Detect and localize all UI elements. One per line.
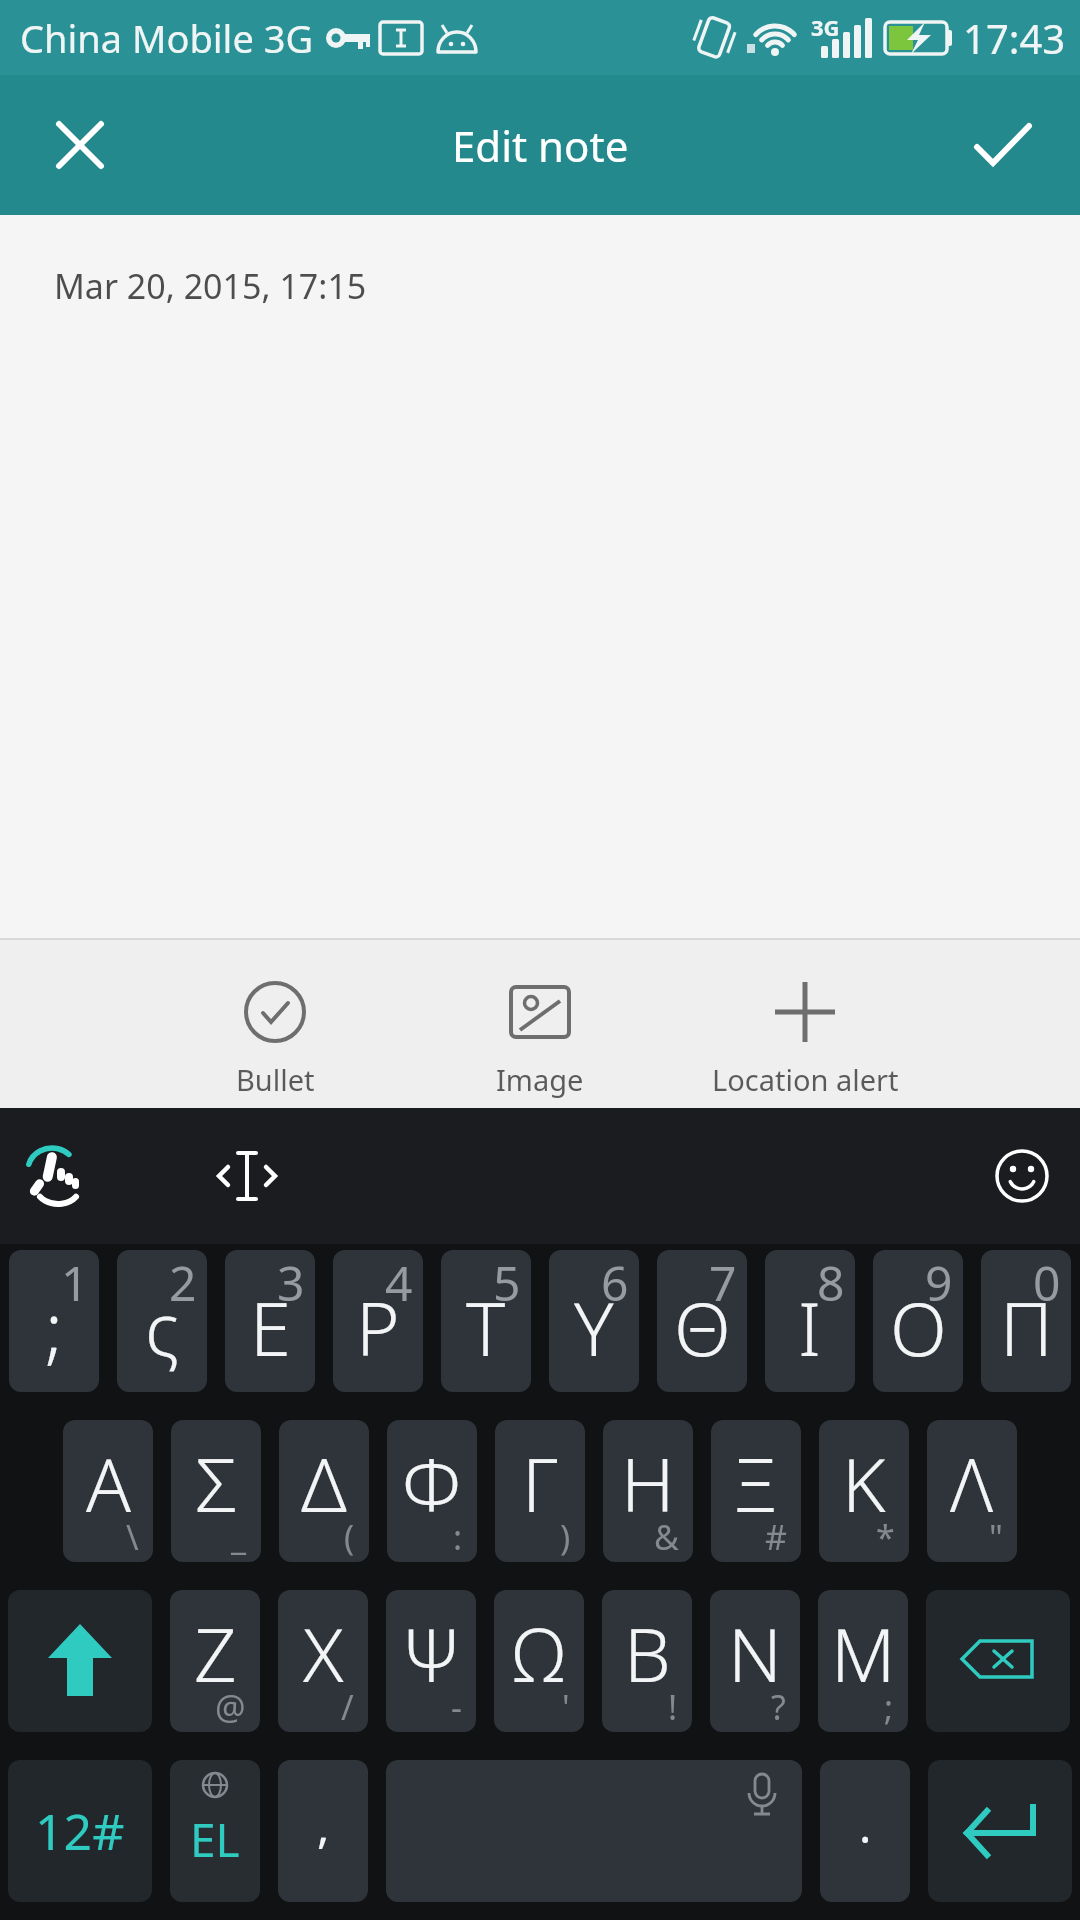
staticText: Γ <box>522 1433 558 1534</box>
button[interactable]: Ζ <box>170 1590 260 1732</box>
button[interactable]: . <box>820 1760 910 1902</box>
button[interactable]: Μ <box>818 1590 908 1732</box>
staticText: Δ <box>301 1433 347 1534</box>
staticText: Π <box>1000 1277 1053 1378</box>
staticText: Ξ <box>733 1433 779 1534</box>
staticText: / <box>341 1684 354 1730</box>
button[interactable]: 5 <box>441 1250 531 1392</box>
staticText: \ <box>126 1514 139 1560</box>
button[interactable]: Β <box>602 1590 692 1732</box>
button[interactable] <box>46 111 114 179</box>
button[interactable]: 3 <box>225 1250 315 1392</box>
button[interactable]: Image <box>390 980 690 1099</box>
button[interactable]: 1 <box>9 1250 99 1392</box>
button[interactable]: Α <box>63 1420 153 1562</box>
button[interactable]: Η <box>603 1420 693 1562</box>
button[interactable] <box>992 1146 1052 1206</box>
staticText: ( <box>344 1514 355 1560</box>
button[interactable] <box>24 1144 88 1208</box>
staticText: 4 <box>385 1250 413 1315</box>
staticText: 7 <box>709 1250 737 1315</box>
staticText: & <box>654 1514 679 1560</box>
button[interactable]: 12# <box>8 1760 152 1902</box>
staticText: Τ <box>466 1277 506 1378</box>
staticText: Μ <box>831 1603 896 1704</box>
button[interactable]: Λ <box>927 1420 1017 1562</box>
staticText: : <box>453 1514 463 1560</box>
staticText: 9 <box>925 1250 953 1315</box>
staticText: Υ <box>574 1277 614 1378</box>
staticText: * <box>876 1514 895 1560</box>
staticText: Ω <box>513 1603 565 1704</box>
staticText: Κ <box>842 1433 886 1534</box>
staticText: Mar 20, 2015, 17:15 <box>54 263 367 309</box>
staticText: Ι <box>798 1277 822 1378</box>
button[interactable]: 4 <box>333 1250 423 1392</box>
button[interactable]: Ψ <box>386 1590 476 1732</box>
staticText: EL <box>190 1808 240 1871</box>
button[interactable] <box>212 1144 282 1208</box>
staticText: Ν <box>728 1603 782 1704</box>
button[interactable]: 9 <box>873 1250 963 1392</box>
staticText: Φ <box>402 1433 462 1534</box>
staticText: Ο <box>890 1277 947 1378</box>
button[interactable]: 0 <box>981 1250 1071 1392</box>
staticText: _ <box>231 1514 247 1560</box>
staticText: ς <box>145 1277 179 1378</box>
staticText: Χ <box>303 1603 344 1704</box>
button[interactable]: Ξ <box>711 1420 801 1562</box>
staticText: Α <box>86 1433 131 1534</box>
button[interactable]: Κ <box>819 1420 909 1562</box>
button[interactable]: Σ <box>171 1420 261 1562</box>
staticText: ' <box>562 1684 570 1730</box>
button[interactable]: Γ <box>495 1420 585 1562</box>
staticText: Η <box>621 1433 675 1534</box>
button[interactable] <box>386 1760 802 1902</box>
staticText: 8 <box>817 1250 845 1315</box>
staticText: # <box>765 1514 787 1560</box>
staticText: 2 <box>169 1250 197 1315</box>
staticText: ; <box>45 1277 64 1378</box>
button[interactable]: Χ <box>278 1590 368 1732</box>
staticText: " <box>989 1514 1003 1560</box>
button[interactable] <box>968 110 1038 180</box>
staticText: Ψ <box>402 1603 461 1704</box>
button[interactable]: Location alert <box>655 980 955 1099</box>
button[interactable]: 8 <box>765 1250 855 1392</box>
staticText: 1 <box>61 1250 89 1315</box>
button[interactable]: Ν <box>710 1590 800 1732</box>
staticText: China Mobile 3G <box>20 12 314 64</box>
staticText: 3 <box>277 1250 305 1315</box>
staticText: ) <box>560 1514 571 1560</box>
button[interactable] <box>8 1590 152 1732</box>
staticText: Ε <box>250 1277 291 1378</box>
staticText: , <box>317 1794 330 1857</box>
staticText: 6 <box>601 1250 629 1315</box>
staticText: @ <box>215 1684 246 1730</box>
staticText: Ρ <box>356 1277 400 1378</box>
staticText: Ζ <box>194 1603 237 1704</box>
button[interactable]: 2 <box>117 1250 207 1392</box>
staticText: 0 <box>1033 1250 1061 1315</box>
staticText: Location alert <box>712 1060 899 1099</box>
staticText: 5 <box>493 1250 521 1315</box>
staticText: ! <box>668 1684 678 1730</box>
button[interactable] <box>926 1590 1070 1732</box>
staticText: Λ <box>950 1433 994 1534</box>
button[interactable]: , <box>278 1760 368 1902</box>
button[interactable]: 6 <box>549 1250 639 1392</box>
button[interactable]: Δ <box>279 1420 369 1562</box>
button[interactable] <box>928 1760 1072 1902</box>
button[interactable]: 7 <box>657 1250 747 1392</box>
staticText: Image <box>496 1060 584 1099</box>
button[interactable]: Ω <box>494 1590 584 1732</box>
staticText: Bullet <box>236 1060 315 1099</box>
button[interactable]: EL <box>170 1760 260 1902</box>
staticText: Θ <box>674 1277 731 1378</box>
button[interactable]: Bullet <box>125 980 425 1099</box>
staticText: Β <box>624 1603 671 1704</box>
staticText: - <box>451 1684 462 1730</box>
staticText: ? <box>771 1684 786 1730</box>
staticText: ; <box>884 1684 894 1730</box>
button[interactable]: Φ <box>387 1420 477 1562</box>
